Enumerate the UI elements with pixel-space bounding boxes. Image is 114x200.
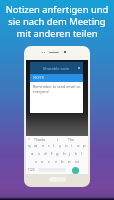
staticText: e: [42, 143, 45, 149]
staticText: x: [41, 159, 44, 165]
staticText: b: [61, 159, 64, 165]
staticText: f: [51, 151, 53, 157]
staticText: t: [53, 143, 55, 149]
staticText: w: [34, 143, 38, 149]
staticText: y: [59, 143, 62, 149]
staticText: .: [69, 168, 70, 172]
staticText: i: [71, 143, 73, 149]
staticText: The: [68, 137, 74, 142]
staticText: k: [75, 151, 78, 157]
staticText: Notizen anfertigen und sie nach dem Meet…: [3, 3, 111, 40]
staticText: NOTE: [33, 75, 44, 81]
staticText: v: [55, 159, 58, 165]
staticText: r: [48, 143, 50, 149]
staticText: g: [56, 151, 59, 157]
staticText: l: [81, 151, 83, 157]
staticText: h: [63, 151, 66, 157]
staticText: p: [83, 143, 86, 149]
staticText: q: [28, 143, 31, 149]
staticText: ?123: [28, 168, 35, 172]
staticText: c: [48, 159, 51, 165]
staticText: u: [65, 143, 68, 149]
staticText: o: [77, 143, 80, 149]
staticText: d: [44, 151, 47, 157]
staticText: I: [57, 137, 59, 142]
other: Send: [72, 167, 79, 174]
staticText: j: [69, 151, 71, 157]
staticText: n: [68, 159, 71, 165]
staticText: z: [35, 159, 37, 165]
staticText: Sharable note: [43, 66, 70, 71]
staticText: Thanks: [34, 137, 46, 142]
staticText: s: [38, 151, 41, 157]
staticText: a: [31, 151, 34, 157]
staticText: m: [75, 159, 79, 165]
staticText: Remember to send email to everyone!: [33, 84, 80, 94]
